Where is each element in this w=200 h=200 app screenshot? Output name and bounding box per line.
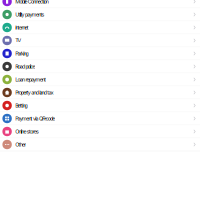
staticText: Online stores: [15, 128, 39, 135]
button[interactable]: Other: [0, 138, 200, 151]
staticText: Utility payments: [15, 11, 45, 18]
button[interactable]: Payment via QR-code: [0, 112, 200, 125]
staticText: Loan repayment: [15, 76, 46, 83]
staticText: Payment via QR-code: [15, 115, 55, 122]
button[interactable]: Betting: [0, 99, 200, 112]
staticText: Property and land tax: [15, 89, 54, 96]
staticText: Parking: [15, 50, 29, 57]
staticText: Betting: [15, 102, 28, 109]
button[interactable]: Loan repayment: [0, 73, 200, 86]
button[interactable]: Mobile Connection: [0, 0, 200, 8]
button[interactable]: Parking: [0, 47, 200, 60]
staticText: Internet: [15, 24, 29, 31]
button[interactable]: Road police: [0, 60, 200, 73]
button[interactable]: Online stores: [0, 125, 200, 138]
staticText: TV: [15, 37, 21, 44]
button[interactable]: TV: [0, 34, 200, 47]
button[interactable]: Utility payments: [0, 8, 200, 21]
staticText: Mobile Connection: [15, 0, 49, 5]
staticText: Road police: [15, 63, 35, 70]
button[interactable]: Property and land tax: [0, 86, 200, 99]
staticText: Other: [15, 141, 26, 148]
button[interactable]: Internet: [0, 21, 200, 34]
